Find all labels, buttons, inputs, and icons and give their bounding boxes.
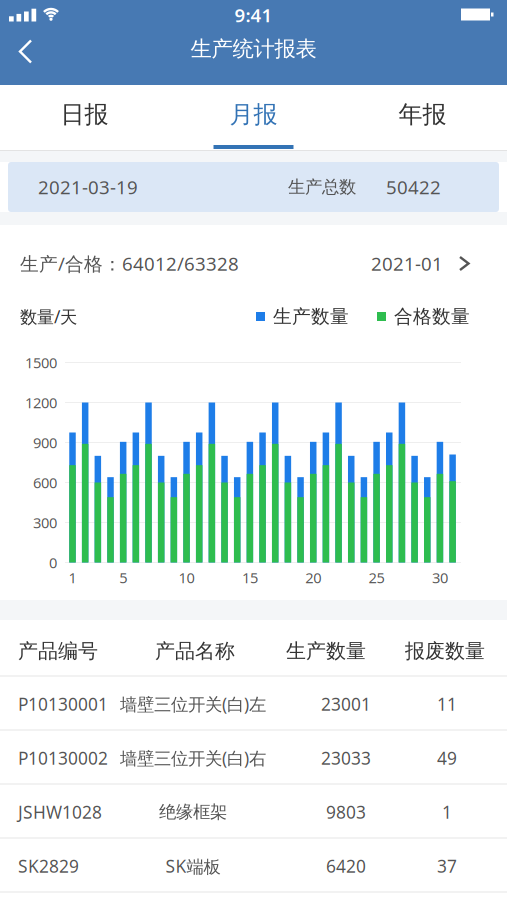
- staticText: 1500: [25, 353, 57, 372]
- staticText: 0: [49, 553, 57, 572]
- staticText: 15: [242, 568, 258, 587]
- staticText: 2021-03-19: [38, 175, 138, 199]
- staticText: P10130001: [18, 692, 108, 715]
- staticText: 生产统计报表: [190, 36, 316, 62]
- staticText: 生产/合格：64012/63328: [20, 251, 239, 276]
- staticText: 日报: [60, 100, 108, 129]
- staticText: 生产数量: [286, 639, 366, 663]
- staticText: 9803: [326, 800, 366, 823]
- staticText: 49: [437, 746, 457, 769]
- button[interactable]: Back: [15, 36, 55, 66]
- staticText: 绝缘框架: [159, 801, 227, 823]
- staticText: 数量/天: [20, 305, 77, 328]
- staticText: 1200: [25, 393, 57, 412]
- staticText: 5: [119, 568, 127, 587]
- staticText: 23033: [321, 746, 371, 769]
- staticText: 合格数量: [394, 305, 470, 328]
- button[interactable]: 2021-03-19: [8, 162, 499, 212]
- staticText: 300: [33, 513, 57, 532]
- staticText: 600: [33, 473, 57, 492]
- staticText: 月报: [229, 100, 277, 129]
- staticText: 25: [369, 568, 385, 587]
- button[interactable]: 日报: [0, 85, 169, 150]
- staticText: 900: [33, 433, 57, 452]
- staticText: 墙壁三位开关(白)右: [120, 746, 266, 769]
- button[interactable]: 月报: [169, 85, 338, 150]
- staticText: 50422: [386, 175, 441, 199]
- staticText: 30: [432, 568, 448, 587]
- staticText: 2021-01: [371, 251, 443, 276]
- staticText: 墙壁三位开关(白)左: [120, 692, 266, 715]
- staticText: P10130002: [18, 746, 108, 769]
- staticText: 6420: [326, 854, 366, 877]
- staticText: 37: [437, 854, 457, 877]
- staticText: 20: [305, 568, 321, 587]
- staticText: 1: [442, 800, 452, 823]
- staticText: 9:41: [234, 3, 272, 27]
- staticText: 11: [437, 692, 457, 715]
- button[interactable]: Select month: [371, 251, 507, 276]
- staticText: 产品名称: [155, 639, 235, 663]
- staticText: JSHW1028: [18, 800, 102, 823]
- button[interactable]: 年报: [338, 85, 507, 150]
- staticText: SK2829: [18, 854, 79, 877]
- staticText: 1: [68, 568, 76, 587]
- staticText: 23001: [321, 692, 371, 715]
- staticText: 10: [178, 568, 194, 587]
- staticText: 生产总数: [288, 176, 356, 198]
- staticText: SK端板: [165, 854, 220, 877]
- staticText: 年报: [398, 100, 446, 129]
- staticText: 报废数量: [405, 639, 485, 663]
- staticText: 产品编号: [18, 639, 98, 663]
- staticText: 生产数量: [273, 305, 349, 328]
